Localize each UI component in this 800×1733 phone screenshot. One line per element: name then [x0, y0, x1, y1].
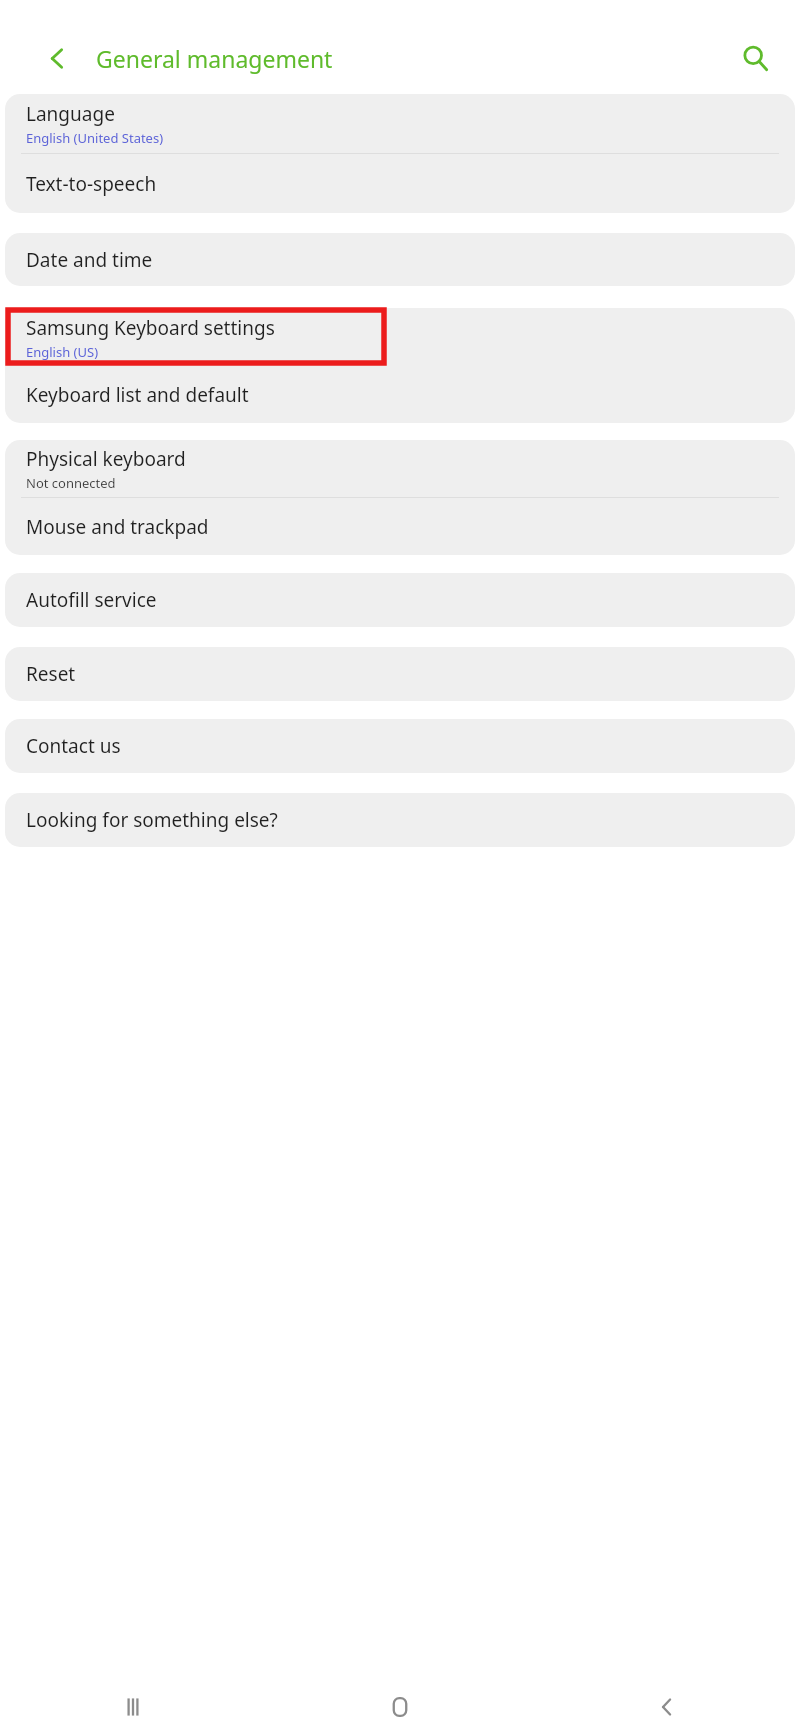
- button[interactable]: Date and time: [5, 233, 795, 286]
- button[interactable]: Contact us: [5, 719, 795, 773]
- staticText: Autofill service: [26, 587, 157, 613]
- staticText: Looking for something else?: [26, 807, 278, 833]
- staticText: Reset: [26, 661, 76, 687]
- button[interactable]: Text-to-speech: [5, 154, 795, 213]
- button[interactable]: Recent apps: [0, 1681, 266, 1733]
- staticText: Date and time: [26, 247, 153, 273]
- button[interactable]: Search: [732, 35, 778, 81]
- staticText: Keyboard list and default: [26, 382, 249, 408]
- staticText: English (United States): [26, 129, 164, 147]
- button[interactable]: Physical keyboard: [5, 440, 795, 497]
- staticText: Language: [26, 101, 115, 127]
- staticText: Text-to-speech: [26, 171, 157, 197]
- staticText: Not connected: [26, 474, 116, 492]
- button[interactable]: Reset: [5, 647, 795, 701]
- button[interactable]: Samsung Keyboard settings: [5, 308, 795, 367]
- staticText: Samsung Keyboard settings: [26, 315, 275, 341]
- staticText: English (US): [26, 343, 99, 361]
- staticText: General management: [96, 43, 333, 74]
- button[interactable]: Back: [34, 35, 80, 81]
- button[interactable]: Back: [533, 1681, 800, 1733]
- button[interactable]: Language: [5, 94, 795, 153]
- button[interactable]: Looking for something else?: [5, 793, 795, 847]
- button[interactable]: Home: [266, 1681, 533, 1733]
- button[interactable]: Keyboard list and default: [5, 367, 795, 423]
- button[interactable]: Autofill service: [5, 573, 795, 627]
- staticText: Physical keyboard: [26, 446, 186, 472]
- button[interactable]: Mouse and trackpad: [5, 498, 795, 555]
- staticText: Mouse and trackpad: [26, 514, 209, 540]
- staticText: Contact us: [26, 733, 121, 759]
